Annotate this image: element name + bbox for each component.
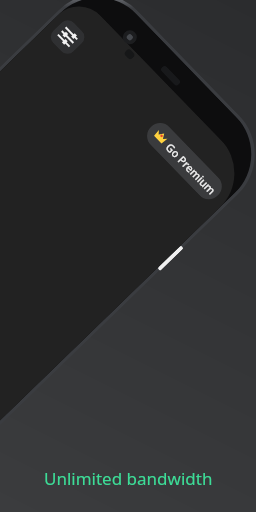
staticText: Unlimited bandwidth [44,467,213,490]
staticText: Go Premium [163,140,219,198]
button[interactable]: Go Premium [142,118,227,205]
button[interactable]: Settings [47,16,88,57]
